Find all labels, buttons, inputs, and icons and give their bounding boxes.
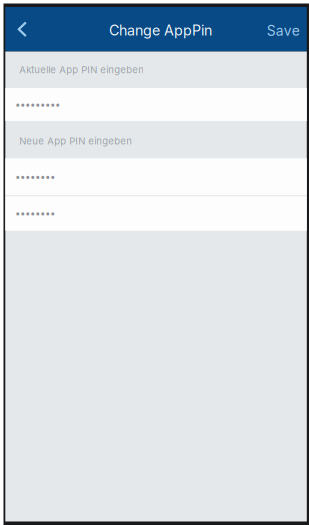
button[interactable]: ••••••••: [5, 196, 307, 231]
button[interactable]: Save: [267, 7, 307, 51]
staticText: Save: [267, 22, 300, 39]
button[interactable]: ••••••••: [5, 158, 307, 196]
staticText: ••••••••: [15, 205, 55, 222]
button[interactable]: •••••••••: [5, 88, 307, 121]
button[interactable]: Back: [5, 7, 39, 51]
staticText: Aktuelle App PIN eingeben: [19, 64, 144, 75]
staticText: Neue App PIN eingeben: [19, 135, 132, 147]
staticText: Change AppPin: [109, 22, 212, 39]
staticText: ••••••••: [15, 168, 55, 186]
staticText: •••••••••: [15, 96, 60, 113]
